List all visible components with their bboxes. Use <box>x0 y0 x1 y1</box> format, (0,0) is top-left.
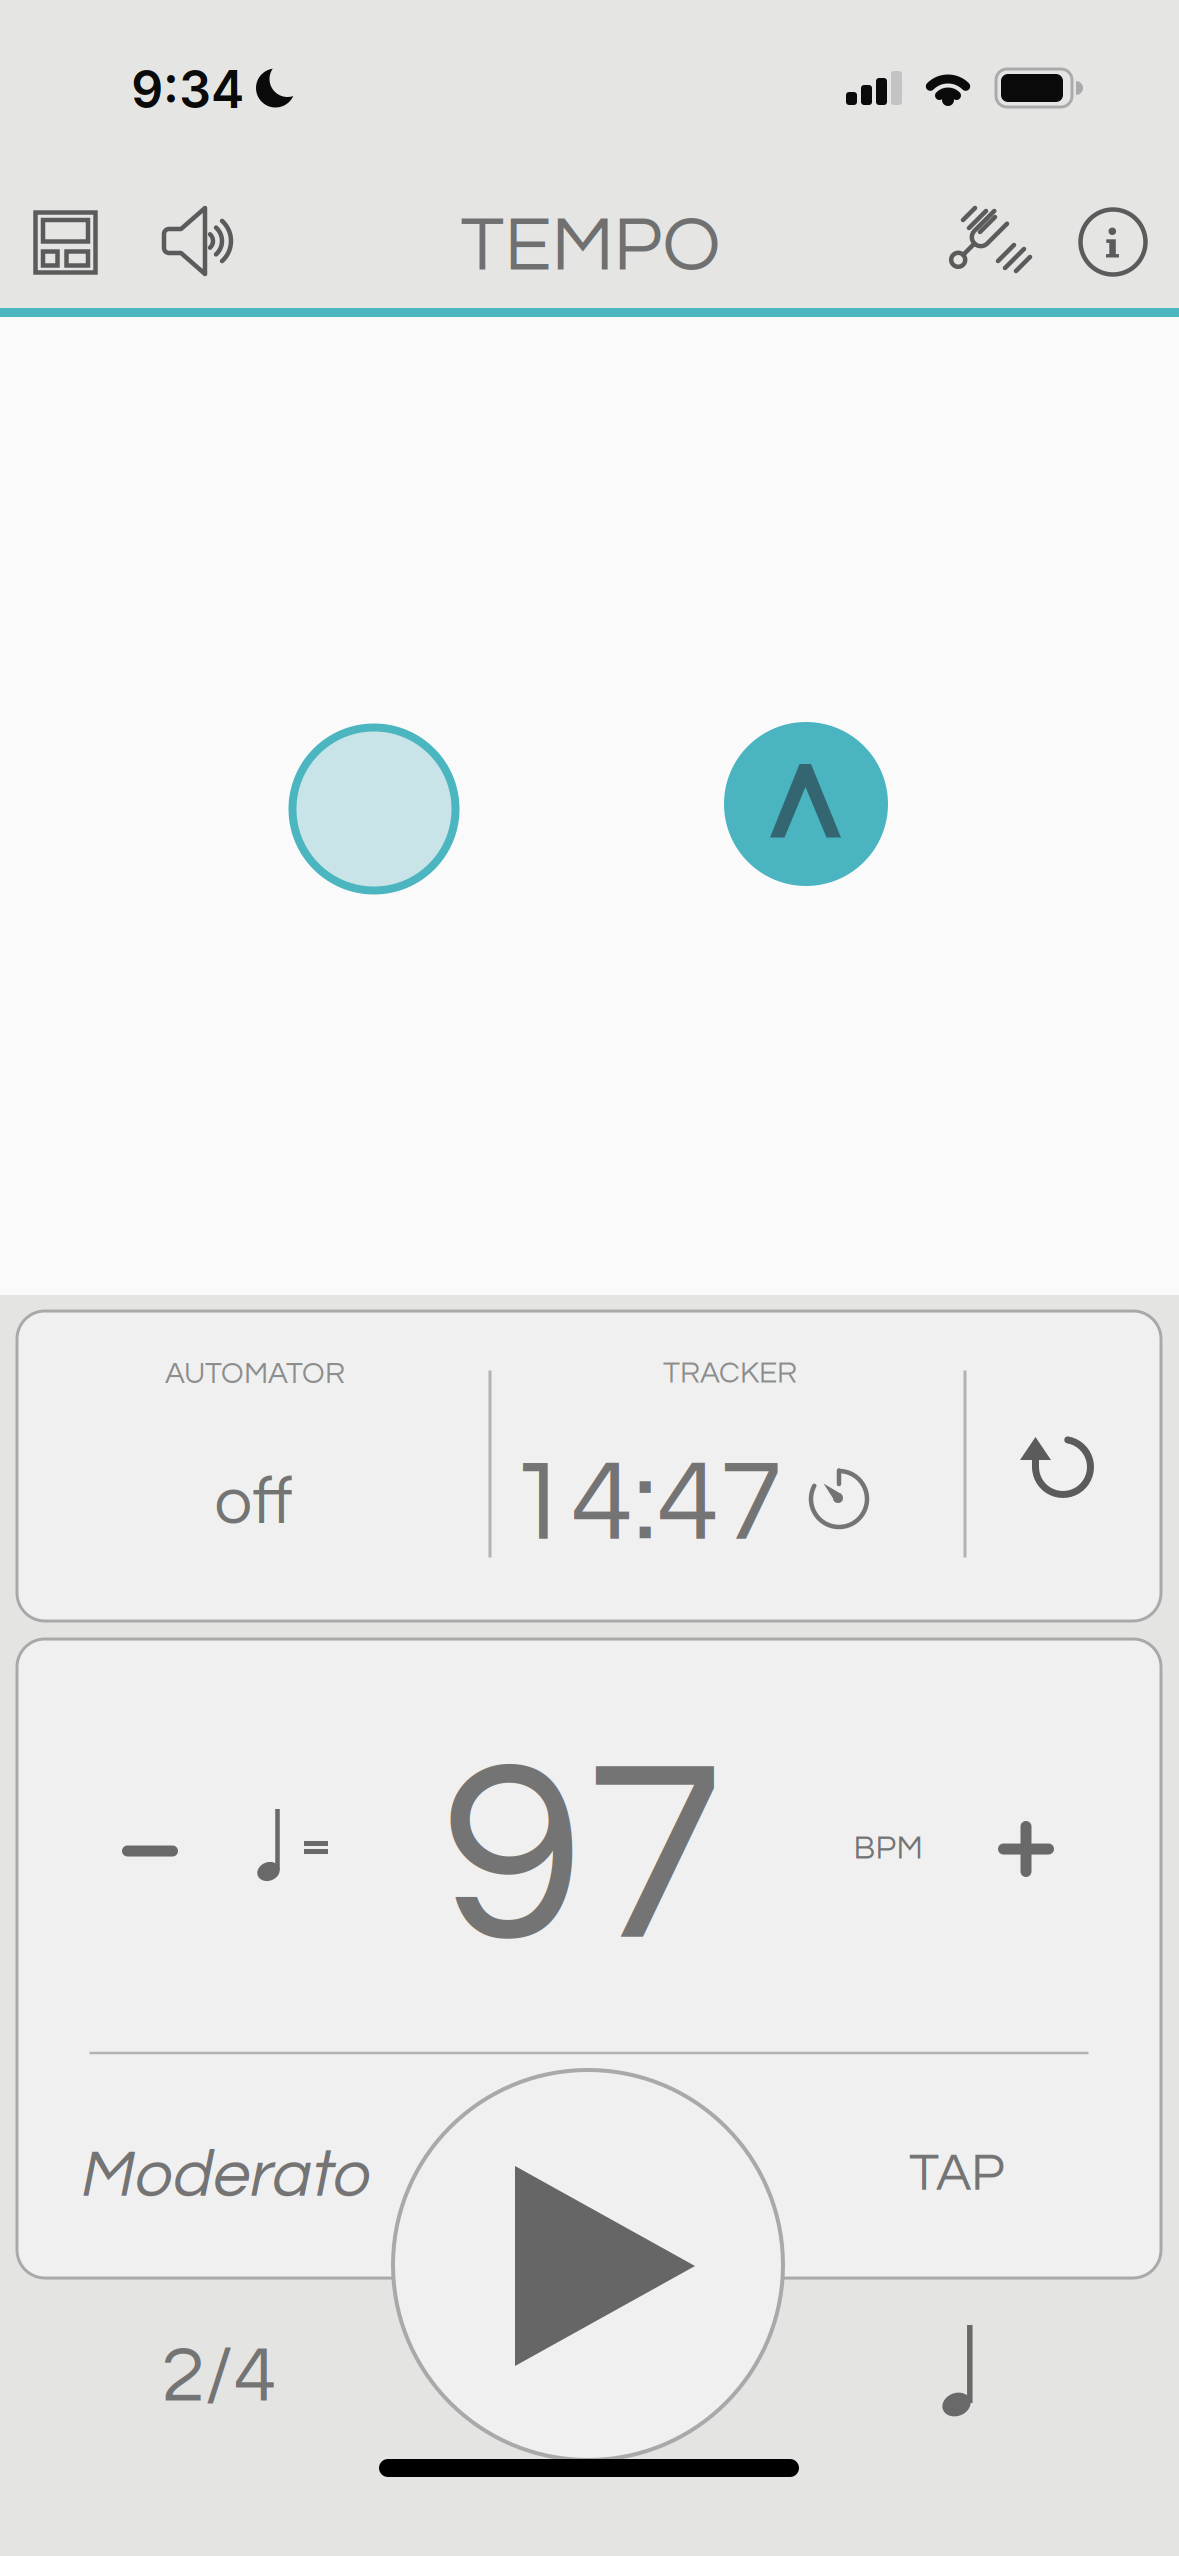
staticText: TRACKER <box>663 1358 797 1389</box>
staticText: TAP <box>909 2146 1004 2201</box>
button[interactable]: Increase tempo <box>966 1789 1086 1909</box>
staticText: 97 <box>442 1726 726 1991</box>
button[interactable]: Tuner <box>0 0 1179 2556</box>
button[interactable]: Note value <box>913 2310 1003 2430</box>
button[interactable]: Decrease tempo <box>90 1791 210 1911</box>
button[interactable]: TAP <box>889 2126 1024 2221</box>
staticText: Moderato <box>78 2141 368 2210</box>
button[interactable]: Beat unit <box>235 1791 345 1901</box>
button[interactable]: Layout <box>0 0 1179 2556</box>
staticText: TEMPO <box>460 206 720 286</box>
staticText: 9:34 <box>129 57 247 120</box>
button[interactable]: AUTOMATOR <box>20 1316 480 1616</box>
staticText: off <box>215 1468 293 1537</box>
button[interactable]: Play <box>393 2070 783 2460</box>
button[interactable]: Reset tracker <box>1005 1411 1115 1521</box>
staticText: 2/4 <box>161 2336 276 2417</box>
staticText: AUTOMATOR <box>165 1358 345 1389</box>
staticText: 14:47 <box>507 1444 782 1562</box>
staticText: BPM <box>853 1832 922 1865</box>
button[interactable]: Info <box>1080 209 1145 274</box>
button[interactable]: TRACKER <box>492 1316 962 1616</box>
button[interactable]: 2/4 <box>145 2320 292 2433</box>
button[interactable]: Moderato <box>64 2127 382 2224</box>
button[interactable]: Sound <box>0 0 1179 2556</box>
